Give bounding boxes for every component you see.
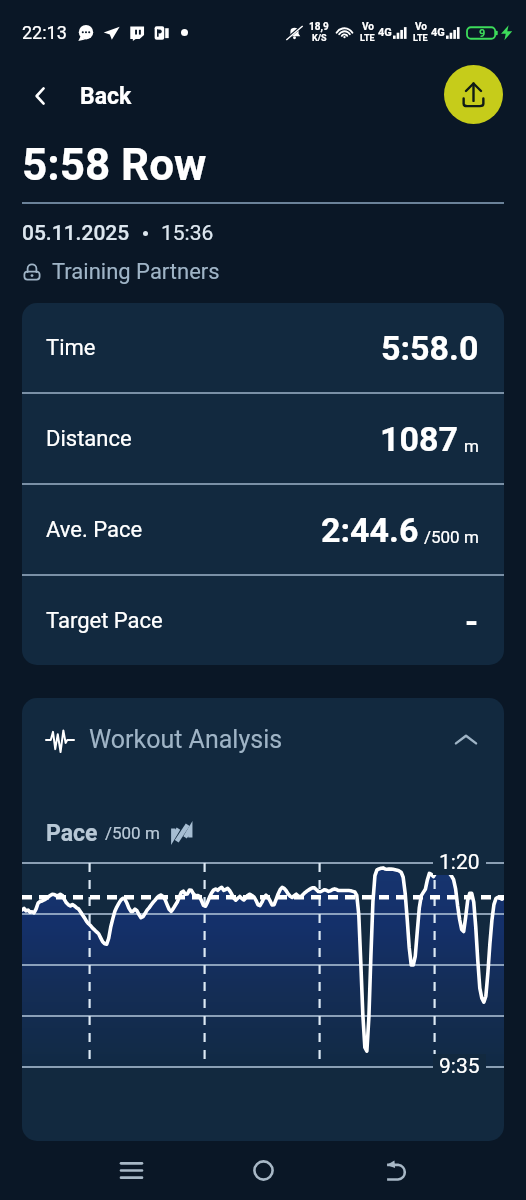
button[interactable]: Target Pace xyxy=(22,576,504,665)
staticText: Workout Analysis xyxy=(89,725,283,754)
button[interactable]: Back xyxy=(362,1141,428,1200)
staticText: 15:36 xyxy=(161,221,214,246)
staticText: Vo xyxy=(415,21,427,33)
button[interactable]: Back xyxy=(18,74,62,118)
staticText: 05.11.2025 xyxy=(22,221,130,246)
other: Collapse xyxy=(452,726,480,754)
staticText: 1:20 xyxy=(439,850,480,875)
button[interactable]: Distance xyxy=(22,394,504,483)
staticText: 2:44.6 xyxy=(321,510,419,550)
staticText: 5:58 Row xyxy=(22,139,207,191)
staticText: 18,9 xyxy=(309,21,329,33)
staticText: m xyxy=(464,436,479,456)
staticText: Training Partners xyxy=(52,259,220,285)
button[interactable]: Recents xyxy=(98,1141,164,1200)
staticText: Time xyxy=(46,335,96,361)
staticText: Target Pace xyxy=(46,608,163,634)
staticText: Ave. Pace xyxy=(46,517,143,543)
staticText: 1087 xyxy=(380,419,459,459)
button[interactable]: Share xyxy=(444,65,503,124)
staticText: - xyxy=(465,601,479,641)
button[interactable]: Home xyxy=(230,1141,296,1200)
staticText: 9 xyxy=(479,27,486,40)
staticText: 4G xyxy=(431,26,445,39)
staticText: Pace xyxy=(46,820,98,847)
staticText: Back xyxy=(80,83,132,110)
staticText: LTE xyxy=(413,33,428,44)
staticText: K/S xyxy=(312,33,327,44)
button[interactable]: Workout Analysis xyxy=(22,698,504,781)
staticText: Distance xyxy=(46,426,132,452)
staticText: /500 m xyxy=(424,527,479,547)
staticText: /500 m xyxy=(105,823,160,843)
staticText: 4G xyxy=(378,26,392,39)
staticText: LTE xyxy=(360,33,375,44)
staticText: 5:58.0 xyxy=(381,328,479,368)
staticText: 22:13 xyxy=(22,22,67,43)
button[interactable]: Ave. Pace xyxy=(22,485,504,574)
staticText: 9:35 xyxy=(439,1054,480,1079)
staticText: Vo xyxy=(362,21,374,33)
button[interactable]: Time xyxy=(22,303,504,392)
